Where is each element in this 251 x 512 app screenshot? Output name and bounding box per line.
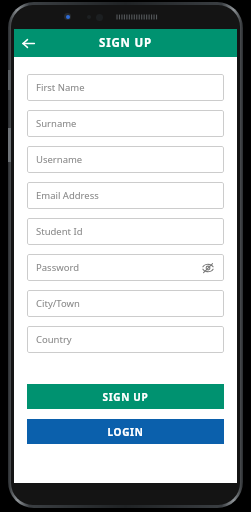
button[interactable]: City/Town bbox=[27, 290, 224, 317]
button[interactable]: SIGN UP bbox=[27, 384, 224, 409]
button[interactable]: Back bbox=[14, 29, 42, 57]
staticText: Country bbox=[36, 333, 215, 346]
staticText: LOGIN bbox=[107, 425, 144, 439]
button[interactable]: Student Id bbox=[27, 218, 224, 245]
staticText: First Name bbox=[36, 81, 215, 94]
button[interactable]: First Name bbox=[27, 74, 224, 101]
button[interactable]: Username bbox=[27, 146, 224, 173]
button[interactable]: Surname bbox=[27, 110, 224, 137]
staticText: Username bbox=[36, 153, 215, 166]
button[interactable]: Email Address bbox=[27, 182, 224, 209]
staticText: SIGN UP bbox=[102, 390, 149, 404]
staticText: SIGN UP bbox=[99, 35, 152, 51]
staticText: Email Address bbox=[36, 189, 215, 202]
staticText: Password bbox=[36, 261, 200, 274]
staticText: Surname bbox=[36, 117, 215, 130]
button[interactable]: Password bbox=[27, 254, 224, 281]
button[interactable]: Country bbox=[27, 326, 224, 353]
staticText: City/Town bbox=[36, 297, 215, 310]
staticText: Student Id bbox=[36, 225, 215, 238]
button[interactable]: Show password bbox=[200, 260, 215, 275]
button[interactable]: LOGIN bbox=[27, 419, 224, 444]
